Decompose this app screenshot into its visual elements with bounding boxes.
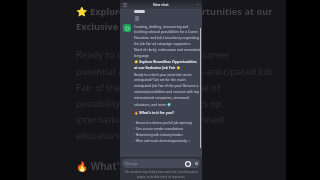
staticText: 🔥 What's in it for you? (134, 110, 174, 115)
button[interactable]: Send (184, 160, 191, 167)
staticText: • (134, 121, 136, 125)
staticText: ⭐ Explore Boundless Opportunities at our… (76, 5, 285, 33)
staticText: This assistant may display inaccurate in… (123, 170, 199, 178)
staticText: Creating, drafting, announcing and build… (134, 24, 200, 58)
staticText: Ready to unlock your potential career an… (134, 72, 200, 106)
staticText: Message (125, 162, 138, 166)
staticText: • (134, 127, 136, 131)
staticText: ⭐ Explore Boundless Opportunities at our… (134, 59, 200, 70)
button[interactable] (134, 10, 145, 13)
staticText: Were and much-desired opportunity ⚪ (136, 139, 191, 143)
staticText: 🔥 What's in it for you? (76, 160, 188, 173)
staticText: One-on-one vendor consultations (136, 127, 184, 131)
staticText: • (134, 133, 136, 137)
staticText: Ready to unlock your dream career potent… (76, 48, 273, 142)
button[interactable]: Message (122, 159, 200, 168)
staticText: New chat (153, 2, 169, 7)
button[interactable]: More options (195, 2, 200, 7)
button[interactable]: Menu (121, 1, 128, 8)
staticText: • (134, 139, 136, 143)
button[interactable]: Attach (194, 161, 199, 166)
staticText: Networking with industry leaders (136, 133, 183, 137)
staticText: Access to a diverse pool of job openings (136, 121, 193, 125)
